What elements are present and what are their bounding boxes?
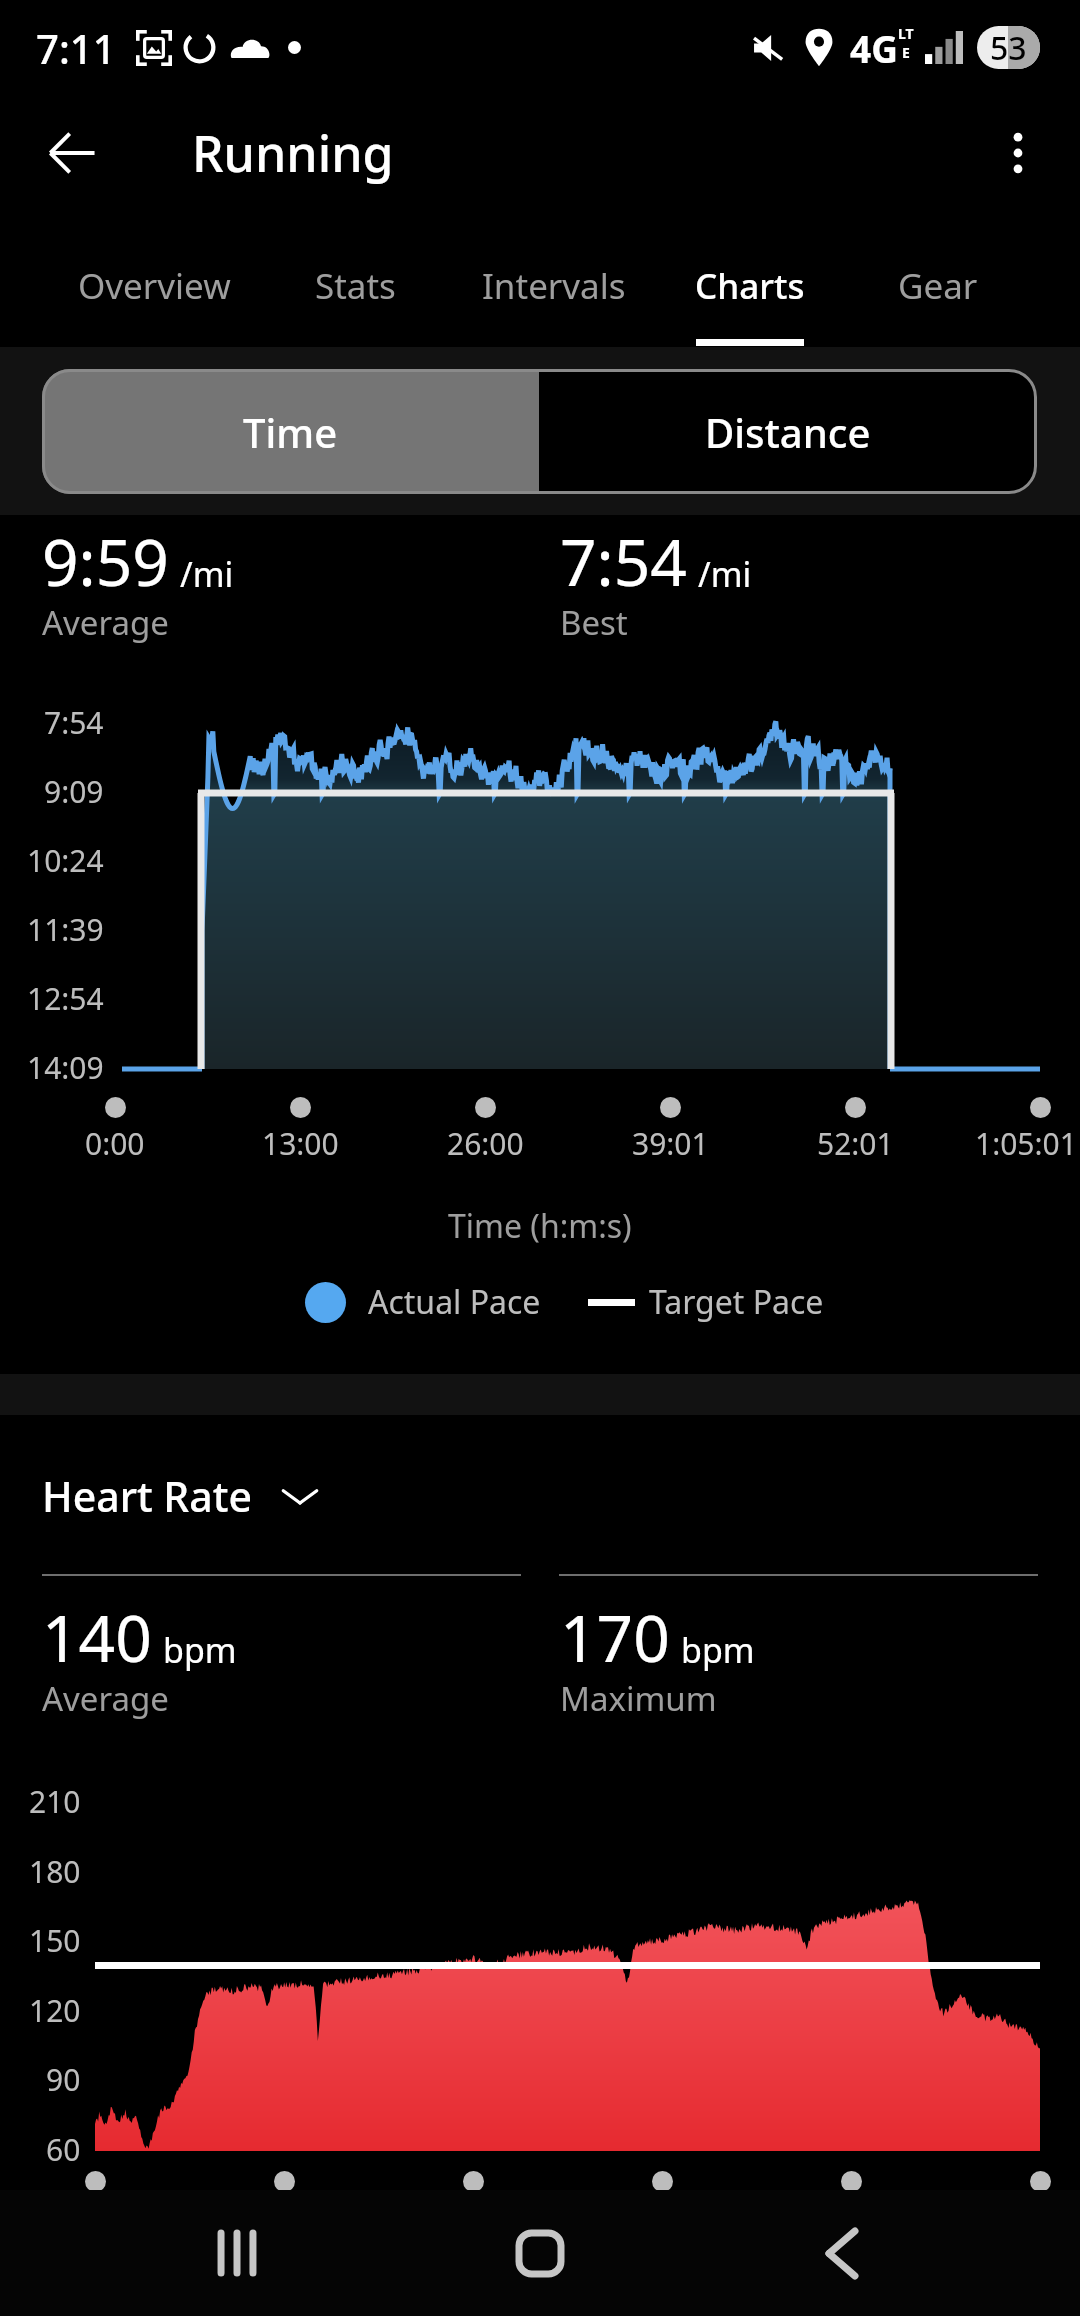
staticText: Time (h:m:s) (448, 1204, 632, 1248)
staticText: LT (898, 24, 914, 43)
staticText: 170 (560, 1594, 670, 1681)
staticText: 39:01 (632, 1123, 709, 1164)
staticText: Average (42, 1676, 169, 1721)
staticText: 12:54 (27, 978, 104, 1019)
staticText: 13:00 (262, 1123, 339, 1164)
button[interactable]: Home (440, 2190, 640, 2316)
staticText: 9:59 (42, 518, 169, 605)
staticText: Intervals (482, 262, 626, 310)
staticText: 210 (29, 1781, 81, 1822)
staticText: Overview (78, 262, 231, 310)
staticText: 14:09 (27, 1047, 104, 1088)
staticText: Target Pace (649, 1280, 824, 1324)
staticText: Actual Pace (368, 1280, 541, 1324)
button[interactable]: Charts (685, 210, 815, 347)
staticText: Time (243, 405, 338, 459)
button[interactable]: Distance (539, 369, 1037, 494)
button[interactable]: Stats (295, 210, 415, 347)
staticText: 9:09 (44, 771, 104, 812)
staticText: 120 (29, 1990, 81, 2031)
staticText: E (902, 43, 910, 62)
staticText: 52:01 (817, 1123, 894, 1164)
button[interactable]: Gear (883, 210, 993, 347)
staticText: Maximum (560, 1676, 717, 1721)
staticText: bpm (681, 1627, 755, 1673)
staticText: Running (192, 119, 394, 187)
staticText: Heart Rate (42, 1468, 252, 1524)
button[interactable]: More options (968, 103, 1068, 203)
staticText: Charts (695, 262, 805, 310)
staticText: bpm (163, 1627, 237, 1673)
staticText: 180 (29, 1851, 81, 1892)
staticText: 53 (990, 26, 1027, 69)
staticText: Distance (705, 405, 871, 459)
staticText: 1:05:01 (975, 1123, 1077, 1164)
staticText: 10:24 (27, 840, 104, 881)
button[interactable]: Overview (69, 210, 239, 347)
button[interactable]: Time (42, 369, 539, 494)
staticText: /mi (180, 551, 234, 597)
button[interactable]: Recent apps (137, 2190, 337, 2316)
staticText: Best (560, 600, 628, 645)
button[interactable]: Heart Rate (42, 1468, 322, 1524)
staticText: Gear (898, 262, 978, 310)
staticText: 0:00 (85, 1123, 145, 1164)
staticText: 90 (46, 2059, 81, 2100)
staticText: Average (42, 600, 169, 645)
staticText: Stats (315, 262, 396, 310)
staticText: 11:39 (27, 909, 104, 950)
staticText: 7:54 (560, 518, 687, 605)
button[interactable]: Back (742, 2190, 942, 2316)
staticText: 7:54 (44, 702, 104, 743)
staticText: 140 (42, 1594, 152, 1681)
button[interactable]: Back (22, 103, 122, 203)
staticText: 4G (850, 23, 898, 73)
staticText: 7:11 (36, 21, 116, 75)
button[interactable]: Intervals (471, 210, 636, 347)
staticText: /mi (698, 551, 752, 597)
staticText: 150 (29, 1920, 81, 1961)
staticText: 26:00 (447, 1123, 524, 1164)
staticText: 60 (46, 2129, 81, 2170)
